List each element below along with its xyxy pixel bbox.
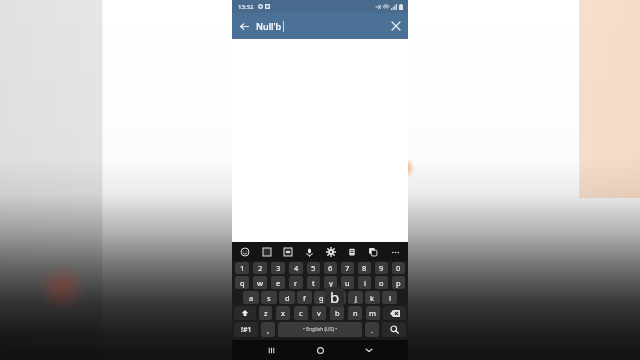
button[interactable]: k: [365, 291, 380, 304]
staticText: 2: [258, 263, 263, 273]
staticText: .: [371, 325, 374, 335]
staticText: 7: [345, 263, 350, 273]
staticText: b: [330, 287, 340, 307]
button[interactable]: p: [392, 276, 405, 289]
button[interactable]: More options: [387, 244, 403, 260]
staticText: g: [319, 293, 324, 303]
staticText: s: [267, 293, 271, 303]
staticText: w: [257, 278, 263, 288]
staticText: 13:52: [238, 3, 254, 11]
staticText: • English (US) •: [303, 326, 338, 333]
button[interactable]: 2: [253, 262, 267, 274]
staticText: u: [345, 278, 350, 288]
staticText: 1: [240, 263, 245, 273]
staticText: c: [299, 308, 303, 318]
staticText: f: [303, 293, 306, 303]
button[interactable]: z: [259, 306, 272, 320]
staticText: 0: [396, 263, 401, 273]
staticText: 5: [311, 263, 316, 273]
staticText: 3: [276, 263, 281, 273]
button[interactable]: g: [314, 291, 329, 304]
button[interactable]: Symbols: [234, 322, 258, 337]
staticText: z: [264, 308, 268, 318]
button[interactable]: 1: [235, 262, 249, 274]
button[interactable]: GIF: [280, 244, 296, 260]
staticText: e: [276, 278, 281, 288]
button[interactable]: Shift: [234, 306, 256, 320]
staticText: 6: [328, 263, 333, 273]
button[interactable]: ,: [261, 322, 275, 337]
staticText: Null'b: [256, 20, 282, 32]
staticText: t: [312, 278, 315, 288]
button[interactable]: h: [331, 291, 346, 304]
staticText: b: [335, 308, 340, 318]
button[interactable]: Backspace: [383, 306, 406, 320]
button[interactable]: Search: [382, 322, 406, 337]
button[interactable]: n: [348, 306, 362, 320]
staticText: !#1: [241, 325, 252, 335]
staticText: x: [281, 308, 285, 318]
button[interactable]: i: [358, 276, 371, 289]
button[interactable]: r: [289, 276, 303, 289]
button[interactable]: x: [276, 306, 290, 320]
button[interactable]: 9: [375, 262, 388, 274]
button[interactable]: Translate: [365, 244, 381, 260]
button[interactable]: 8: [358, 262, 371, 274]
button[interactable]: Home: [310, 340, 330, 360]
staticText: y: [329, 278, 333, 288]
button[interactable]: 5: [307, 262, 320, 274]
button[interactable]: c: [294, 306, 308, 320]
staticText: 8: [362, 263, 367, 273]
button[interactable]: f: [297, 291, 312, 304]
button[interactable]: y: [324, 276, 337, 289]
button[interactable]: s: [261, 291, 277, 304]
button[interactable]: 4: [289, 262, 303, 274]
staticText: l: [389, 293, 391, 303]
button[interactable]: w: [253, 276, 267, 289]
button[interactable]: m: [366, 306, 380, 320]
button[interactable]: v: [312, 306, 326, 320]
button[interactable]: e: [271, 276, 285, 289]
button[interactable]: Hide keyboard: [359, 340, 379, 360]
staticText: ,: [267, 325, 270, 335]
button[interactable]: b: [330, 306, 344, 320]
button[interactable]: Settings: [323, 244, 339, 260]
staticText: q: [240, 278, 245, 288]
staticText: k: [370, 293, 375, 303]
button[interactable]: l: [382, 291, 397, 304]
button[interactable]: .: [365, 322, 379, 337]
button[interactable]: u: [341, 276, 354, 289]
staticText: n: [353, 308, 358, 318]
button[interactable]: 7: [341, 262, 354, 274]
button[interactable]: Space: [278, 322, 362, 337]
button[interactable]: 3: [271, 262, 285, 274]
staticText: i: [364, 278, 366, 288]
staticText: r: [294, 278, 298, 288]
staticText: m: [369, 308, 377, 318]
button[interactable]: Stickers: [259, 244, 275, 260]
button[interactable]: Clear: [384, 14, 408, 38]
button[interactable]: j: [348, 291, 363, 304]
button[interactable]: Back: [232, 14, 256, 38]
staticText: h: [336, 293, 341, 303]
button[interactable]: t: [307, 276, 320, 289]
staticText: 4: [294, 263, 299, 273]
button[interactable]: Emoji: [237, 244, 253, 260]
button[interactable]: 0: [392, 262, 405, 274]
staticText: d: [285, 293, 290, 303]
button[interactable]: Null'b: [256, 13, 384, 39]
button[interactable]: q: [235, 276, 249, 289]
staticText: a: [249, 293, 254, 303]
staticText: v: [317, 308, 321, 318]
button[interactable]: Voice input: [301, 244, 317, 260]
button[interactable]: a: [243, 291, 259, 304]
staticText: o: [379, 278, 384, 288]
button[interactable]: 6: [324, 262, 337, 274]
button[interactable]: d: [279, 291, 295, 304]
button[interactable]: o: [375, 276, 388, 289]
staticText: 9: [379, 263, 384, 273]
button[interactable]: Recents: [261, 340, 281, 360]
staticText: p: [396, 278, 401, 288]
staticText: j: [355, 293, 357, 303]
button[interactable]: Clipboard: [344, 244, 360, 260]
